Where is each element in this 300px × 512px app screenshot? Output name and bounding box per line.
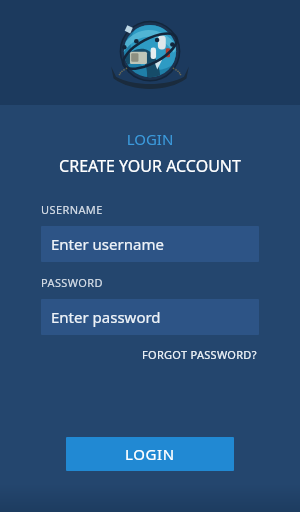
- staticText: LOGIN: [125, 444, 175, 464]
- staticText: LOGIN: [0, 129, 300, 149]
- button[interactable]: FORGOT PASSWORD?: [140, 344, 259, 365]
- button[interactable]: Enter password: [41, 299, 259, 335]
- staticText: FORGOT PASSWORD?: [142, 347, 257, 362]
- staticText: Enter password: [51, 307, 161, 327]
- staticText: PASSWORD: [41, 275, 103, 290]
- staticText: CREATE YOUR ACCOUNT: [0, 155, 300, 177]
- staticText: USERNAME: [41, 202, 103, 217]
- other: College logo: [117, 23, 183, 83]
- staticText: Enter username: [51, 234, 164, 254]
- button[interactable]: LOGIN: [66, 437, 234, 471]
- button[interactable]: Enter username: [41, 226, 259, 262]
